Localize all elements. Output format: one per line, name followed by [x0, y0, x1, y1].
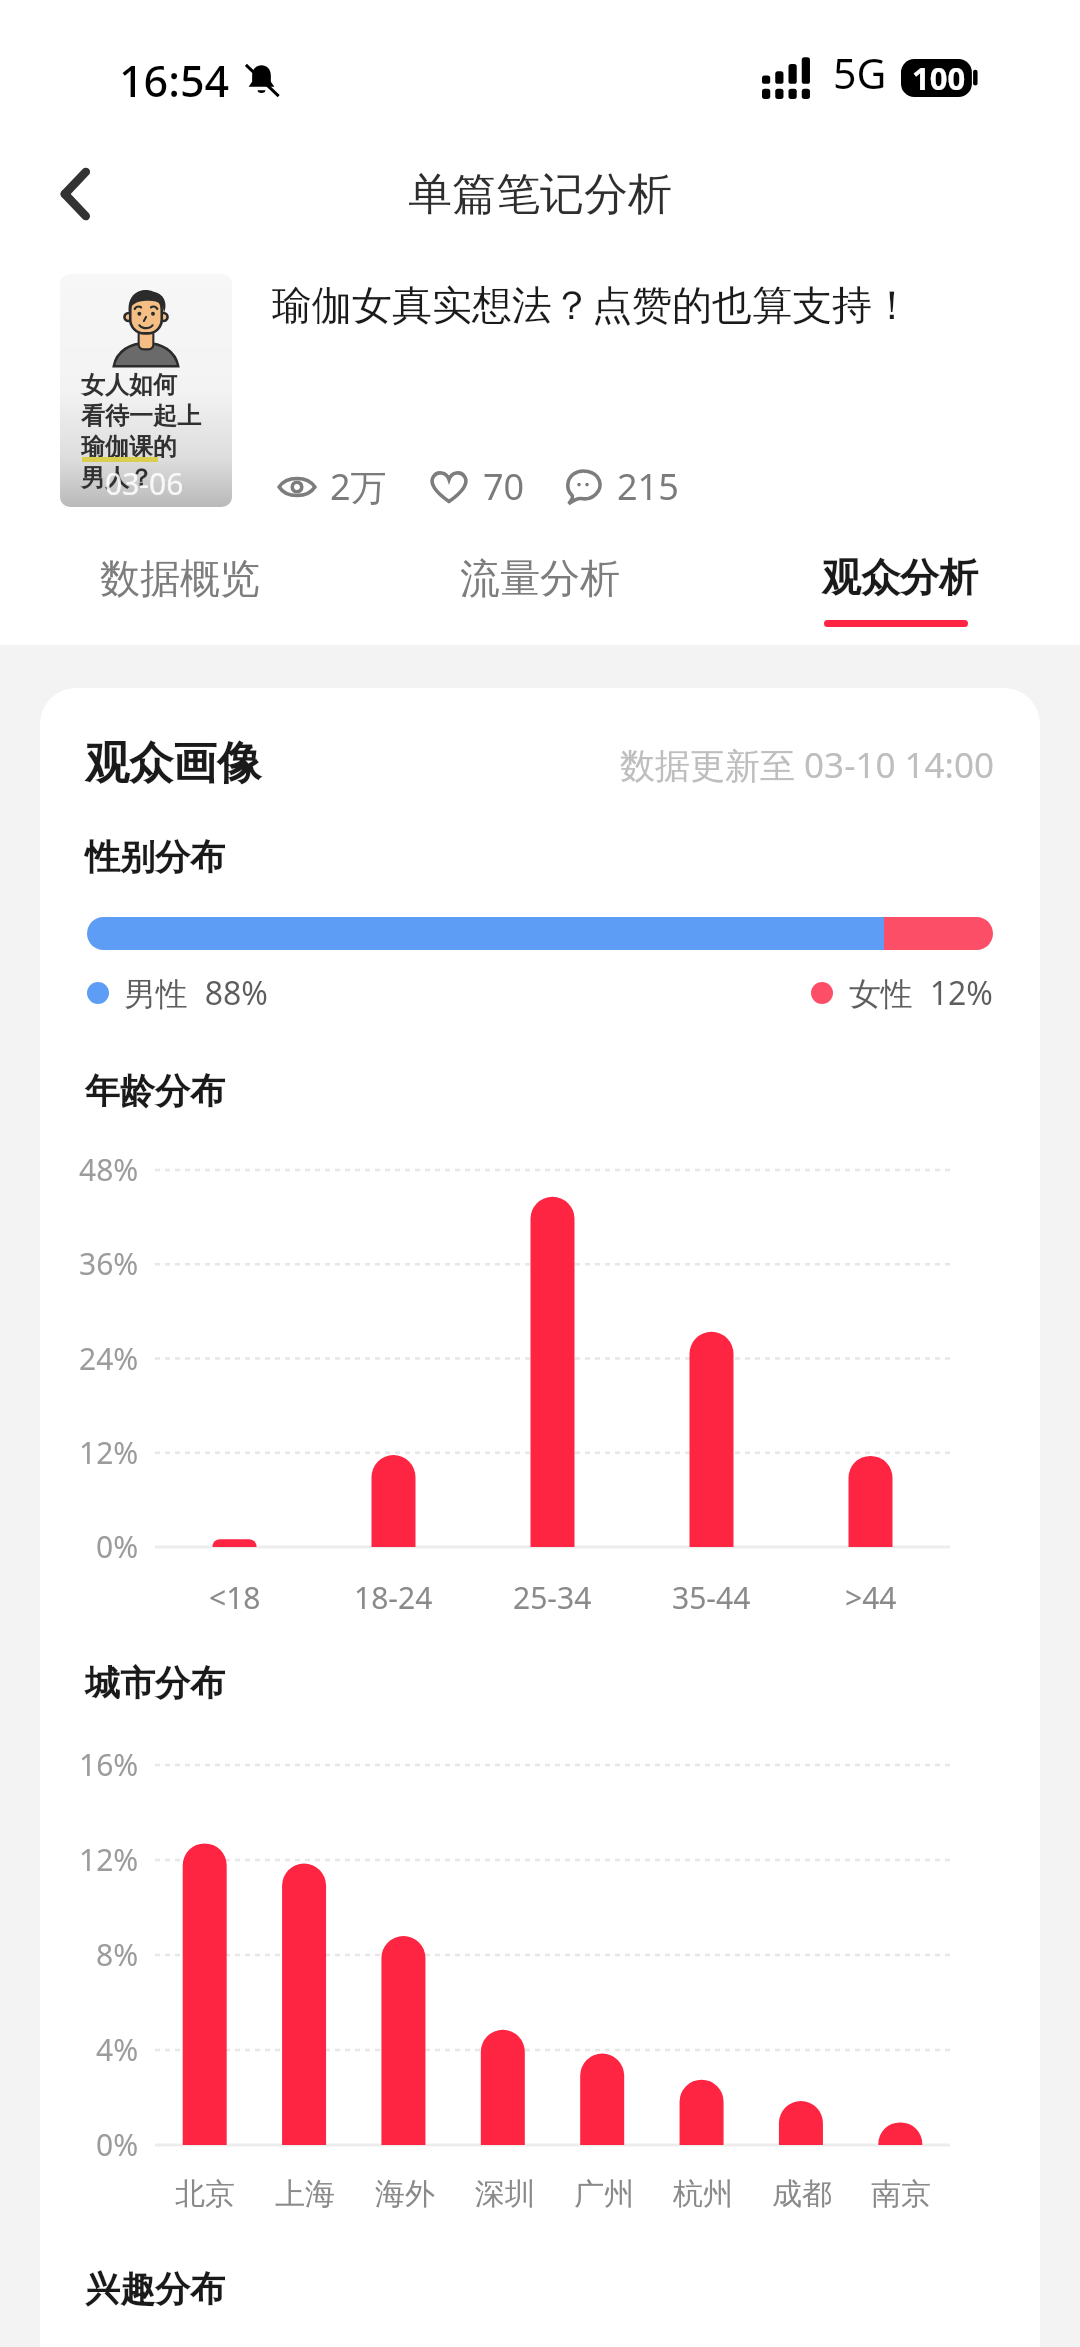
button[interactable]: 观众分析 [720, 520, 1080, 645]
staticText: 16% [79, 1744, 139, 1785]
staticText: 18-24 [354, 1577, 433, 1618]
staticText: 城市分布 [85, 1661, 225, 1705]
staticText: 36% [79, 1243, 139, 1284]
staticText: 5G [833, 45, 887, 101]
staticText: 100 [912, 57, 966, 99]
staticText: 年龄分布 [85, 1069, 225, 1113]
staticText: 2万 [330, 462, 387, 511]
staticText: 4% [96, 2029, 139, 2070]
staticText: 0% [96, 2124, 139, 2165]
staticText: 南京 [871, 2175, 931, 2213]
staticText: 上海 [275, 2175, 335, 2213]
staticText: 35-44 [672, 1577, 751, 1618]
staticText: 杭州 [673, 2175, 733, 2213]
button[interactable]: 流量分析 [360, 520, 720, 645]
staticText: 女性 12% [849, 971, 993, 1015]
staticText: 兴趣分布 [85, 2267, 225, 2311]
button[interactable]: 70 [429, 462, 525, 511]
staticText: 215 [617, 462, 679, 511]
button[interactable]: Back [20, 139, 130, 249]
staticText: 16:54 [119, 51, 230, 110]
staticText: 男性 88% [124, 971, 268, 1015]
staticText: 海外 [375, 2175, 435, 2213]
staticText: 深圳 [475, 2175, 535, 2213]
staticText: <18 [209, 1577, 261, 1618]
button[interactable]: 数据概览 [0, 520, 360, 645]
staticText: 数据更新至 03-10 14:00 [620, 741, 995, 789]
staticText: 流量分析 [460, 553, 620, 603]
staticText: 8% [96, 1934, 139, 1975]
staticText: 03-06 [105, 463, 184, 504]
staticText: 24% [79, 1338, 139, 1379]
button[interactable]: 2万 [278, 462, 387, 511]
staticText: 女人如何 看待一起上 瑜伽课的 男人？ [81, 370, 201, 493]
staticText: 25-34 [513, 1577, 592, 1618]
staticText: 单篇笔记分析 [408, 167, 672, 222]
staticText: 0% [96, 1526, 139, 1567]
button[interactable]: 女人如何 看待一起上 瑜伽课的 男人？ [0, 268, 1080, 518]
staticText: 观众画像 [85, 736, 261, 791]
staticText: 瑜伽女真实想法？点赞的也算支持！ [272, 280, 912, 330]
staticText: 12% [79, 1839, 139, 1880]
staticText: 性别分布 [85, 835, 225, 879]
staticText: >44 [845, 1577, 897, 1618]
staticText: 数据概览 [100, 553, 260, 603]
staticText: 12% [79, 1432, 139, 1473]
staticText: 观众分析 [822, 553, 978, 602]
staticText: 北京 [175, 2175, 235, 2213]
staticText: 广州 [574, 2175, 634, 2213]
staticText: 70 [483, 462, 525, 511]
button[interactable]: 215 [563, 462, 679, 511]
staticText: 成都 [772, 2175, 832, 2213]
staticText: 48% [79, 1149, 139, 1190]
